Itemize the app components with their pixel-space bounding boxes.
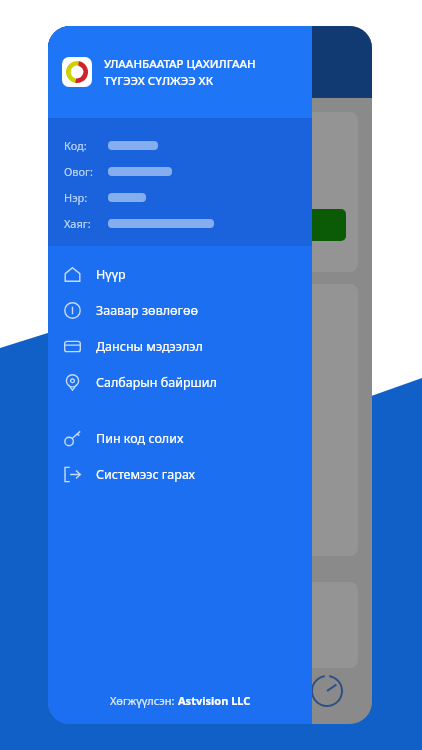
staticText: Нэр: [64, 190, 88, 205]
staticText: Хөгжүүлсэн: [110, 693, 178, 708]
button[interactable]: Заавар зөвлөгөө [48, 292, 312, 328]
staticText: УЛААНБААТАР ЦАХИЛГААН ТҮГЭЭХ СҮЛЖЭЭ ХК [104, 56, 256, 88]
staticText: Хаяг: [64, 216, 91, 231]
staticText: Салбарын байршил [96, 374, 217, 391]
staticText: Код: [64, 138, 87, 153]
staticText: Овог: [64, 164, 93, 179]
button[interactable]: Пин код солих [48, 420, 312, 456]
staticText: Нүүр [96, 266, 126, 283]
staticText: Заавар зөвлөгөө [96, 302, 199, 319]
button[interactable]: Системээс гарах [48, 456, 312, 492]
button[interactable] [74, 209, 346, 241]
staticText: Astvision LLC [178, 693, 251, 708]
staticText: Пин код солих [96, 430, 184, 447]
staticText: Дансны мэдээлэл [96, 338, 203, 355]
staticText: Таны эрх нээгдсэн ба дараах боломжтой [74, 168, 291, 183]
button[interactable]: Speed gauge [310, 674, 344, 708]
button[interactable]: Дансны мэдээлэл [48, 328, 312, 364]
button[interactable]: Салбарын байршил [48, 364, 312, 400]
staticText: Системээс гарах [96, 466, 195, 483]
button[interactable]: Нүүр [48, 256, 312, 292]
